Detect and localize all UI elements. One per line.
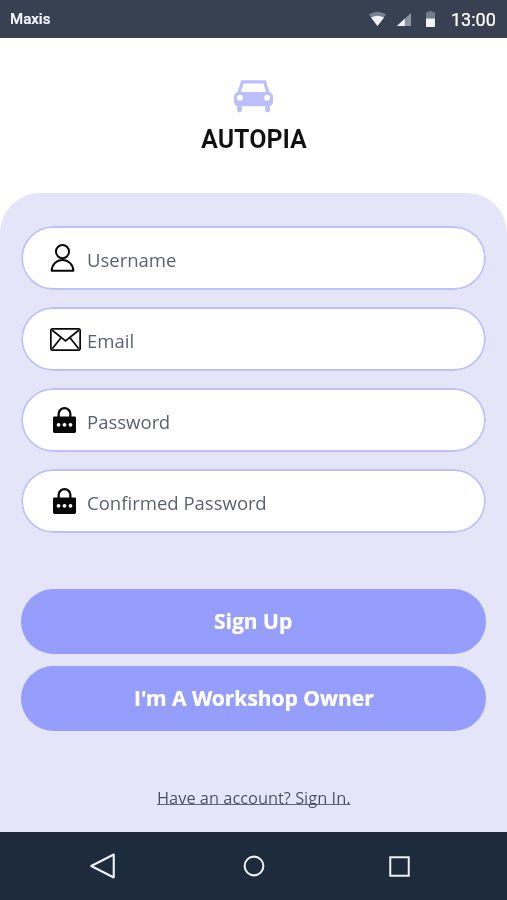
staticText: Email bbox=[87, 328, 135, 353]
button[interactable]: Back bbox=[48, 832, 156, 900]
staticText: Username bbox=[87, 247, 177, 272]
button[interactable]: Have an account? Sign In. bbox=[157, 786, 351, 808]
button[interactable]: Recent apps bbox=[352, 832, 446, 900]
button[interactable]: Sign Up bbox=[21, 589, 486, 654]
button[interactable]: Username bbox=[21, 226, 486, 290]
button[interactable]: Home bbox=[156, 832, 352, 900]
staticText: 13:00 bbox=[451, 9, 496, 30]
button[interactable]: Email bbox=[21, 307, 486, 371]
staticText: Confirmed Password bbox=[87, 490, 267, 515]
staticText: Password bbox=[87, 409, 171, 434]
button[interactable]: I'm A Workshop Owner bbox=[21, 666, 486, 731]
button[interactable]: Confirmed Password bbox=[21, 469, 486, 533]
staticText: Sign Up bbox=[214, 607, 293, 636]
button[interactable]: Password bbox=[21, 388, 486, 452]
staticText: I'm A Workshop Owner bbox=[134, 684, 374, 713]
staticText: AUTOPIA bbox=[201, 125, 307, 149]
staticText: Maxis bbox=[10, 10, 51, 28]
